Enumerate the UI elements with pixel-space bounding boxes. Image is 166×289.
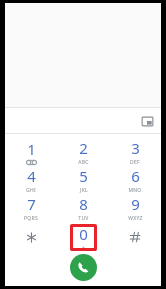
staticText: 3 xyxy=(131,138,140,158)
button[interactable]: Backspace xyxy=(139,113,155,129)
button[interactable]: 7 xyxy=(5,194,57,222)
button[interactable]: 2 xyxy=(57,138,109,166)
button[interactable]: 1 xyxy=(5,138,57,166)
button[interactable]: 3 xyxy=(109,138,161,166)
staticText: 2 xyxy=(79,138,88,158)
button[interactable]: 4 xyxy=(5,166,57,194)
staticText: 6 xyxy=(131,166,140,186)
button[interactable]: 8 xyxy=(57,194,109,222)
button[interactable] xyxy=(5,222,57,252)
button[interactable]: 9 xyxy=(109,194,161,222)
button[interactable]: 5 xyxy=(57,166,109,194)
staticText: DEF xyxy=(130,159,140,166)
staticText: MNO xyxy=(128,187,142,194)
staticText: 5 xyxy=(79,166,88,186)
staticText: ABC xyxy=(78,159,89,166)
button[interactable]: Call xyxy=(70,254,97,281)
staticText: 4 xyxy=(27,166,36,186)
staticText: PQRS xyxy=(24,215,38,222)
staticText: JKL xyxy=(80,187,88,194)
staticText: + xyxy=(82,245,85,251)
button[interactable] xyxy=(109,222,161,252)
staticText: 0 xyxy=(79,224,88,244)
staticText: 9 xyxy=(131,194,140,214)
staticText: WXYZ xyxy=(128,215,143,222)
staticText: 1 xyxy=(27,139,36,159)
staticText: GHI xyxy=(26,187,36,194)
staticText: TUV xyxy=(78,215,89,222)
button[interactable]: 6 xyxy=(109,166,161,194)
staticText: 8 xyxy=(79,194,88,214)
button[interactable]: 0 xyxy=(70,224,97,251)
staticText: 7 xyxy=(27,194,36,214)
